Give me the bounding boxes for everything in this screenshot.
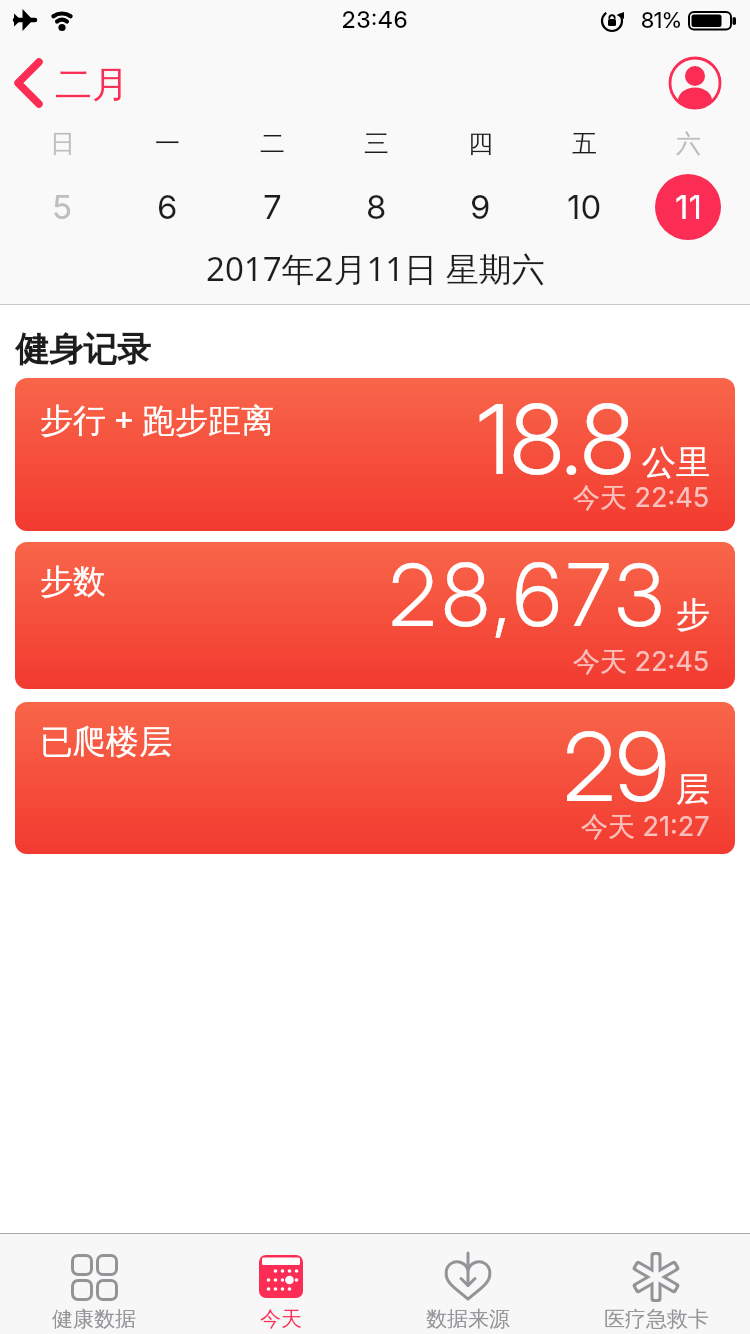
staticText: 四	[468, 128, 493, 158]
staticText: 三	[364, 128, 389, 158]
staticText: 11	[675, 187, 702, 227]
staticText: 10	[567, 187, 602, 227]
staticText: 18.8	[477, 381, 635, 497]
staticText: 已爬楼层	[40, 721, 172, 763]
button[interactable]: 步行 + 跑步距离	[15, 378, 735, 531]
staticText: 23:46	[342, 6, 409, 34]
button[interactable]: 二月	[8, 52, 158, 114]
button[interactable]: 10	[532, 174, 636, 240]
staticText: 28,673	[389, 543, 669, 647]
staticText: 5	[52, 187, 73, 227]
staticText: 健康数据	[52, 1306, 136, 1332]
button[interactable]	[668, 56, 722, 110]
staticText: 五	[572, 128, 597, 158]
button[interactable]: 医疗急救卡	[562, 1234, 750, 1334]
staticText: 81%	[641, 7, 682, 34]
button[interactable]: 8	[324, 174, 428, 240]
staticText: 一	[155, 128, 180, 158]
staticText: 6	[157, 187, 178, 227]
staticText: 2017年2月11日 星期六	[206, 246, 545, 290]
staticText: 7	[263, 187, 282, 227]
staticText: 层	[676, 768, 710, 811]
staticText: 今天 22:45	[573, 481, 710, 515]
button[interactable]: 9	[428, 174, 532, 240]
button[interactable]: 步数	[15, 542, 735, 689]
staticText: 二月	[55, 61, 129, 108]
staticText: 医疗急救卡	[604, 1306, 709, 1332]
staticText: 公里	[642, 441, 710, 484]
staticText: 二	[260, 128, 285, 158]
button[interactable]: 健康数据	[0, 1234, 187, 1334]
staticText: 今天 21:27	[581, 810, 710, 844]
button[interactable]: 11	[636, 174, 740, 240]
staticText: 步数	[40, 561, 106, 603]
staticText: 数据来源	[426, 1306, 510, 1332]
button[interactable]: 数据来源	[374, 1234, 562, 1334]
button[interactable]: 5	[10, 174, 115, 240]
button[interactable]: 7	[220, 174, 324, 240]
button[interactable]: 6	[115, 174, 220, 240]
staticText: 步行 + 跑步距离	[40, 397, 275, 442]
button[interactable]: 已爬楼层	[15, 702, 735, 854]
staticText: 29	[563, 709, 669, 824]
staticText: 9	[470, 187, 491, 227]
staticText: 步	[676, 593, 710, 636]
staticText: 六	[676, 128, 701, 158]
button[interactable]: 今天	[187, 1234, 374, 1334]
staticText: 日	[50, 128, 75, 158]
staticText: 8	[366, 187, 387, 227]
staticText: 今天 22:45	[573, 645, 710, 679]
staticText: 健身记录	[15, 328, 151, 371]
staticText: 今天	[260, 1306, 302, 1332]
